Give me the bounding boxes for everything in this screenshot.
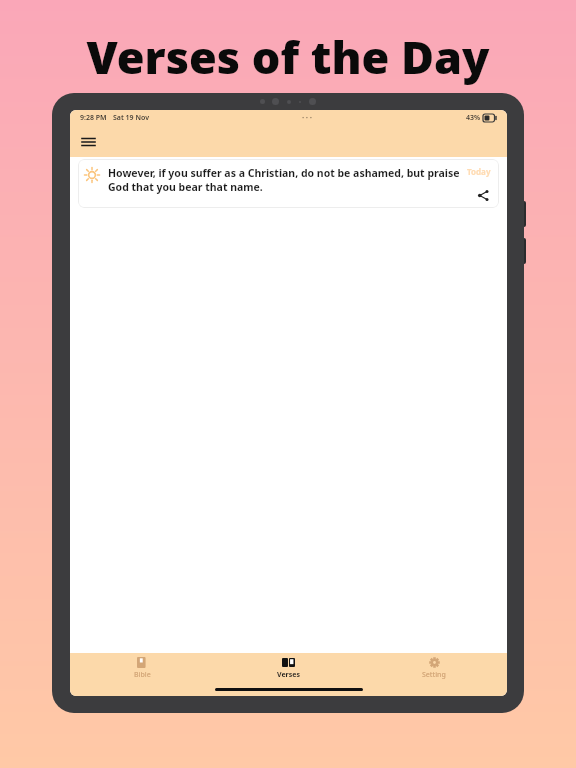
staticText: Setting	[422, 670, 446, 680]
button[interactable]: Bible	[70, 653, 215, 683]
staticText: Today	[467, 166, 491, 177]
staticText: However, if you suffer as a Christian, d…	[108, 166, 461, 194]
button[interactable]: However, if you suffer as a Christian, d…	[78, 159, 499, 208]
button[interactable]: Verses	[215, 653, 361, 683]
staticText: Sat 19 Nov	[113, 113, 149, 123]
staticText: 43%	[466, 113, 481, 123]
button[interactable]: Share	[475, 187, 491, 203]
staticText: 9:28 PM	[80, 113, 107, 123]
staticText: Verses	[277, 670, 300, 680]
staticText: • • •	[302, 114, 312, 122]
staticText: Verses of the Day	[86, 26, 490, 87]
button[interactable]: Setting	[361, 653, 507, 683]
staticText: Bible	[134, 670, 151, 680]
button[interactable]: Menu	[76, 130, 100, 154]
